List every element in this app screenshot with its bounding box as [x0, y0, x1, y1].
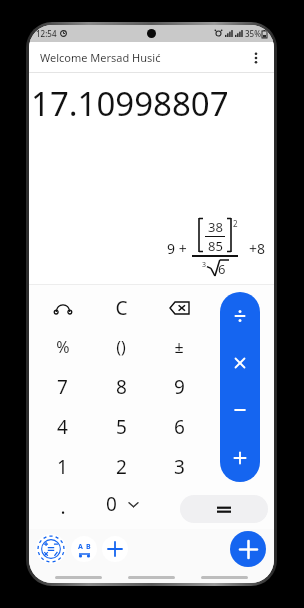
button[interactable]: History: [33, 288, 92, 327]
staticText: 6: [218, 260, 226, 278]
button[interactable]: Add: [220, 434, 260, 482]
staticText: 85: [208, 237, 223, 255]
button[interactable]: C: [92, 288, 150, 327]
staticText: Welcome Mersad Husić: [40, 50, 161, 65]
staticText: %: [56, 336, 70, 358]
button[interactable]: 4: [33, 407, 92, 447]
button[interactable]: 1: [33, 447, 92, 487]
button[interactable]: 8: [92, 367, 150, 407]
staticText: A: [78, 542, 83, 552]
button[interactable]: More options: [242, 44, 270, 72]
button[interactable]: Expand: [125, 496, 141, 512]
staticText: C: [115, 295, 128, 321]
button[interactable]: ±: [150, 327, 208, 367]
staticText: 2: [116, 454, 127, 480]
staticText: 12:54: [36, 28, 57, 39]
button[interactable]: Subtract: [220, 386, 260, 434]
button[interactable]: .: [33, 487, 92, 527]
staticText: 3: [174, 454, 185, 480]
button[interactable]: Multiply: [220, 339, 260, 386]
staticText: 5: [116, 414, 127, 440]
button[interactable]: (): [92, 327, 150, 367]
button[interactable]: 7: [33, 367, 92, 407]
staticText: 1: [57, 454, 68, 480]
button[interactable]: Divide: [220, 292, 260, 339]
button[interactable]: 5: [92, 407, 150, 447]
staticText: 9: [174, 374, 185, 400]
button[interactable]: [180, 495, 268, 523]
staticText: 38: [208, 218, 223, 236]
staticText: 6: [174, 414, 185, 440]
staticText: 7: [57, 374, 68, 400]
staticText: +8: [249, 239, 266, 258]
button[interactable]: %: [33, 327, 92, 367]
button[interactable]: 0: [102, 487, 121, 521]
staticText: ±: [174, 336, 184, 358]
button[interactable]: 3: [150, 447, 208, 487]
staticText: 4: [57, 414, 68, 440]
staticText: 0: [106, 491, 117, 517]
staticText: 17.10998807: [31, 81, 229, 126]
staticText: (): [116, 336, 126, 358]
button[interactable]: 6: [150, 407, 208, 447]
staticText: 35%: [245, 28, 261, 39]
button[interactable]: Add: [230, 531, 266, 567]
button[interactable]: Converter: [71, 536, 97, 562]
staticText: B: [86, 542, 91, 552]
staticText: 3: [202, 260, 207, 270]
staticText: .: [60, 494, 66, 520]
button[interactable]: 2: [92, 447, 150, 487]
staticText: 9 +: [167, 239, 187, 258]
button[interactable]: Calculator: [36, 534, 66, 564]
button[interactable]: 9: [150, 367, 208, 407]
staticText: 2: [233, 218, 238, 229]
staticText: 8: [116, 374, 127, 400]
button[interactable]: Add tool: [102, 536, 128, 562]
button[interactable]: Backspace: [150, 288, 208, 327]
